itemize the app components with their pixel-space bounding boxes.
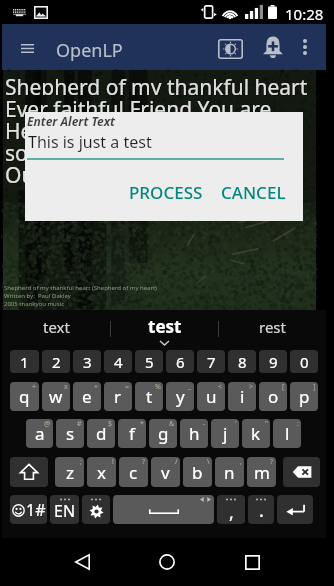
button[interactable]: g [149, 419, 177, 448]
button[interactable]: p [290, 382, 318, 411]
button[interactable]: 7 [197, 350, 225, 373]
staticText: test [148, 315, 182, 338]
staticText: z [66, 461, 74, 484]
button[interactable]: test [111, 310, 218, 348]
staticText: + [32, 382, 37, 392]
button[interactable]: x [87, 457, 116, 487]
staticText: 1# [26, 499, 46, 521]
button[interactable]: s [56, 419, 84, 448]
button[interactable]: y [166, 382, 194, 411]
staticText: [ [282, 382, 285, 392]
button[interactable]: t [135, 382, 163, 411]
button[interactable]: 1 [10, 350, 39, 373]
button[interactable]: Back [60, 540, 104, 584]
button[interactable]: rest [219, 310, 326, 348]
staticText: b [192, 461, 203, 484]
staticText: ; [80, 457, 82, 467]
button[interactable]: text [2, 310, 110, 348]
staticText: " [265, 419, 268, 429]
button[interactable]: . [248, 495, 274, 524]
staticText: / [175, 457, 178, 467]
button[interactable]: i [228, 382, 256, 411]
staticText: a [35, 422, 45, 445]
button[interactable]: f [118, 419, 146, 448]
staticText: \ [207, 457, 210, 467]
button[interactable]: Navigation drawer [10, 35, 44, 61]
staticText: < [218, 382, 223, 392]
staticText: 7 [207, 352, 216, 372]
staticText: j [223, 422, 228, 445]
button[interactable]: l [273, 419, 301, 448]
button[interactable]: r [104, 382, 132, 411]
staticText: : [297, 419, 299, 429]
button[interactable]: 5 [135, 350, 163, 373]
button[interactable]: EN [50, 495, 79, 524]
button[interactable]: o [259, 382, 287, 411]
staticText: c [129, 461, 138, 484]
staticText: w [49, 385, 63, 408]
button[interactable]: e [73, 382, 101, 411]
staticText: l [285, 422, 290, 445]
button[interactable]: Keyboard settings [82, 495, 110, 524]
button[interactable]: CANCEL [212, 175, 295, 210]
button[interactable]: Toggle display [208, 31, 252, 67]
button[interactable]: Home [145, 540, 189, 584]
button[interactable]: 9 [259, 350, 287, 373]
staticText: h [189, 422, 200, 445]
button[interactable]: c [119, 457, 148, 487]
button[interactable]: 3 [73, 350, 101, 373]
button[interactable]: z [55, 457, 84, 487]
button[interactable]: j [211, 419, 239, 448]
staticText: p [299, 385, 310, 408]
button[interactable]: v [151, 457, 180, 487]
button[interactable]: , [217, 495, 245, 524]
button[interactable]: u [197, 382, 225, 411]
button[interactable]: Emoji and symbols [10, 495, 47, 524]
button[interactable]: Backspace [283, 457, 320, 487]
staticText: sounding from our hearts to [6, 140, 287, 162]
staticText: u [206, 385, 217, 408]
staticText: y [176, 385, 185, 408]
staticText: 2 [52, 352, 61, 372]
button[interactable]: q [10, 382, 39, 411]
button[interactable]: b [183, 457, 212, 487]
button[interactable]: 2 [42, 350, 70, 373]
staticText: * [140, 419, 144, 429]
staticText: v [161, 461, 170, 484]
staticText: r [114, 385, 122, 408]
staticText: s [66, 422, 75, 445]
staticText: q [19, 385, 30, 408]
staticText: Ours [6, 162, 55, 184]
button[interactable]: a [26, 419, 53, 448]
staticText: ! [112, 457, 114, 467]
button[interactable]: Space [113, 495, 214, 524]
staticText: text [43, 317, 70, 337]
button[interactable]: 8 [228, 350, 256, 373]
button[interactable]: More options [290, 30, 320, 64]
staticText: g [158, 422, 169, 445]
button[interactable]: This is just a test [28, 131, 152, 153]
button[interactable]: 0 [290, 350, 318, 373]
button[interactable]: Add alert [255, 29, 291, 65]
button[interactable]: 6 [166, 350, 194, 373]
button[interactable]: h [180, 419, 208, 448]
staticText: > [249, 382, 254, 392]
button[interactable]: Recent apps [230, 540, 274, 584]
staticText: sounding from our hearts to [5, 139, 286, 161]
button[interactable]: PROCESS [120, 175, 212, 210]
staticText: 10:28 [285, 4, 324, 24]
button[interactable]: m [247, 457, 276, 487]
staticText: @ [44, 419, 51, 429]
button[interactable]: Enter [277, 495, 313, 524]
button[interactable]: n [215, 457, 244, 487]
button[interactable]: 4 [104, 350, 132, 373]
button[interactable]: w [42, 382, 70, 411]
button[interactable]: d [87, 419, 115, 448]
button[interactable]: k [242, 419, 270, 448]
staticText: d [96, 422, 107, 445]
staticText: 6 [176, 352, 185, 372]
button[interactable]: Shift [10, 457, 48, 487]
staticText: ? [270, 457, 274, 467]
staticText: m [254, 461, 270, 484]
staticText: # [77, 419, 82, 429]
